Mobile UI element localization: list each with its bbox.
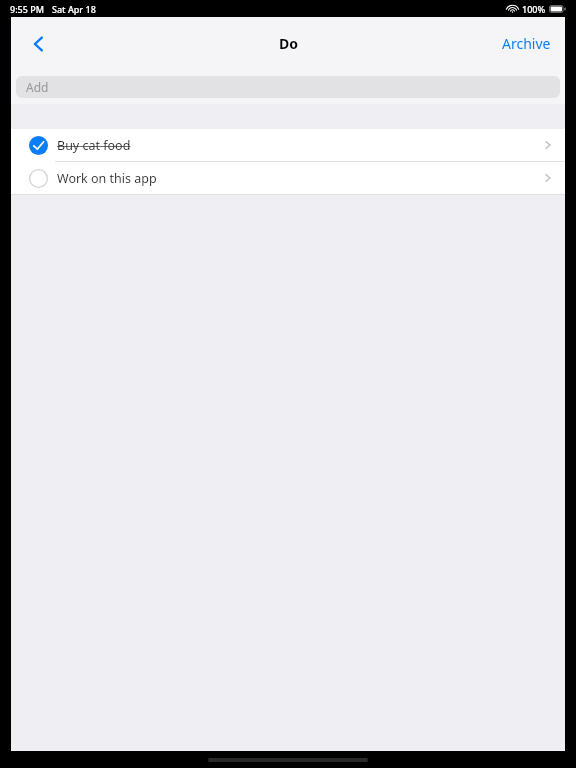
staticText: Work on this app: [57, 170, 157, 187]
staticText: Add: [26, 79, 49, 95]
staticText: Buy cat food: [57, 137, 131, 154]
button[interactable]: Work on this app: [11, 162, 565, 194]
staticText: Archive: [502, 34, 551, 53]
button[interactable]: Archive: [488, 26, 565, 61]
staticText: 9:55 PM: [10, 3, 44, 15]
staticText: Sat Apr 18: [52, 3, 96, 15]
button[interactable]: Back: [19, 24, 59, 64]
button[interactable]: Buy cat food: [11, 129, 565, 161]
button[interactable]: Add: [16, 76, 560, 98]
staticText: 100%: [522, 3, 546, 15]
staticText: Do: [279, 34, 298, 53]
